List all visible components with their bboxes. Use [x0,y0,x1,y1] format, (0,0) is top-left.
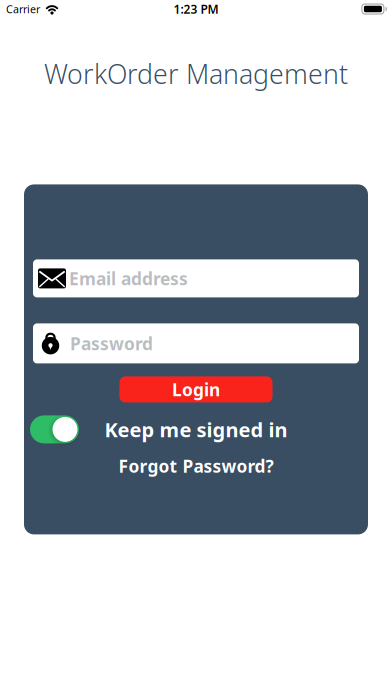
staticText: WorkOrder Management [44,56,348,91]
staticText: Email address [69,267,188,290]
staticText: Password [70,332,153,355]
staticText: 1:23 PM [173,1,218,17]
button[interactable]: Login [119,376,272,402]
button[interactable]: Keep me signed in [30,415,79,443]
staticText: Carrier [6,2,40,16]
staticText: Keep me signed in [104,416,287,443]
staticText: Login [172,378,220,401]
button[interactable]: Forgot Password? [118,454,273,477]
staticText: Forgot Password? [118,454,273,477]
button[interactable]: Email address [33,259,359,297]
button[interactable]: Password [33,323,359,363]
